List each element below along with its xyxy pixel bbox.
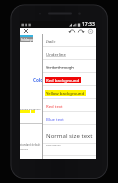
staticText: folder.pdf (21, 38, 33, 42)
staticText: Strikethrough (46, 64, 74, 70)
button[interactable]: Yellow background (43, 86, 96, 99)
button[interactable]: Close (22, 28, 30, 34)
staticText: Underline (46, 51, 66, 57)
staticText: Red background (46, 77, 80, 83)
staticText: Red text (46, 103, 63, 109)
button[interactable]: Italic (43, 34, 96, 47)
button[interactable]: More options (85, 28, 95, 34)
staticText: Small size text (46, 144, 61, 147)
staticText: Blue text (46, 116, 64, 122)
staticText: standard default (20, 143, 41, 147)
button[interactable]: Strikethrough (43, 60, 96, 73)
button[interactable]: Blue text (43, 112, 96, 125)
button[interactable]: Red background (43, 73, 96, 86)
staticText: sample paragraph (20, 107, 41, 110)
button[interactable]: folder.pdf (20, 37, 33, 42)
button[interactable]: Undo (67, 28, 76, 34)
staticText: togetha (20, 148, 29, 151)
button[interactable]: Underline (43, 47, 96, 60)
staticText: Normal size text (46, 131, 93, 139)
button[interactable]: Small size text (43, 144, 96, 156)
button[interactable]: Redo (76, 28, 85, 34)
staticText: 17:33 (82, 21, 95, 28)
button[interactable]: Normal size text (43, 125, 96, 144)
staticText: Yellow background (46, 90, 85, 96)
staticText: Italic (46, 38, 56, 44)
staticText: Colo (33, 77, 44, 83)
button[interactable]: Red text (43, 99, 96, 112)
